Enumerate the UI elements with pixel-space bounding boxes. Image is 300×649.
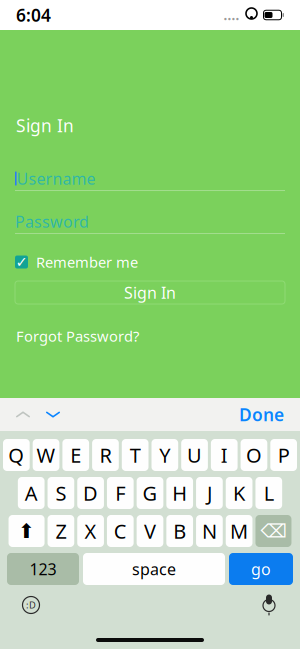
- staticText: Y: [159, 442, 170, 468]
- staticText: G: [142, 480, 157, 506]
- button[interactable]: Previous field: [8, 398, 38, 430]
- button[interactable]: Forgot Password?: [0, 326, 300, 346]
- button[interactable]: Delete: [255, 515, 291, 547]
- button[interactable]: G: [137, 477, 163, 509]
- button[interactable]: go: [229, 553, 293, 585]
- staticText: P: [278, 442, 290, 468]
- staticText: Q: [8, 442, 24, 468]
- button[interactable]: Emoji: [14, 592, 48, 618]
- staticText: O: [246, 442, 262, 468]
- staticText: M: [230, 518, 248, 544]
- button[interactable]: R: [92, 439, 119, 471]
- staticText: H: [172, 480, 187, 506]
- staticText: Sign In: [16, 114, 74, 137]
- button[interactable]: Dictation: [252, 592, 286, 618]
- staticText: ⌫: [260, 520, 286, 542]
- button[interactable]: V: [137, 515, 163, 547]
- staticText: S: [55, 480, 66, 506]
- staticText: B: [173, 518, 186, 544]
- button[interactable]: H: [166, 477, 193, 509]
- staticText: ✓: [15, 254, 27, 270]
- staticText: ....: [223, 6, 239, 24]
- staticText: L: [264, 480, 274, 506]
- button[interactable]: W: [33, 439, 59, 471]
- button[interactable]: P: [270, 439, 297, 471]
- staticText: N: [202, 518, 217, 544]
- staticText: V: [144, 518, 156, 544]
- button[interactable]: F: [107, 477, 134, 509]
- staticText: :D: [26, 599, 36, 611]
- button[interactable]: U: [181, 439, 208, 471]
- staticText: Password: [15, 211, 89, 232]
- button[interactable]: Sign In: [15, 281, 285, 304]
- button[interactable]: B: [166, 515, 193, 547]
- staticText: E: [70, 442, 81, 468]
- staticText: X: [85, 518, 97, 544]
- staticText: Done: [239, 403, 284, 426]
- button[interactable]: Shift: [9, 515, 45, 547]
- button[interactable]: ✓: [0, 252, 300, 272]
- staticText: space: [132, 558, 176, 580]
- staticText: R: [99, 442, 111, 468]
- staticText: C: [114, 518, 127, 544]
- button[interactable]: J: [196, 477, 223, 509]
- staticText: T: [130, 442, 141, 468]
- staticText: U: [187, 442, 202, 468]
- staticText: A: [25, 480, 38, 506]
- button[interactable]: D: [77, 477, 104, 509]
- button[interactable]: I: [211, 439, 238, 471]
- button[interactable]: A: [18, 477, 45, 509]
- staticText: go: [251, 558, 271, 580]
- button[interactable]: Y: [151, 439, 178, 471]
- button[interactable]: Done: [231, 398, 292, 430]
- staticText: Username: [17, 168, 96, 189]
- button[interactable]: T: [122, 439, 148, 471]
- button[interactable]: 123: [7, 553, 79, 585]
- button[interactable]: Next field: [38, 398, 68, 430]
- button[interactable]: M: [226, 515, 252, 547]
- staticText: Sign In: [124, 282, 176, 303]
- button[interactable]: L: [255, 477, 282, 509]
- button[interactable]: space: [83, 553, 225, 585]
- staticText: ⬆: [18, 520, 35, 542]
- staticText: I: [221, 442, 228, 468]
- button[interactable]: N: [196, 515, 223, 547]
- staticText: D: [83, 480, 98, 506]
- staticText: K: [233, 480, 245, 506]
- staticText: Z: [55, 518, 66, 544]
- staticText: Forgot Password?: [16, 326, 139, 346]
- button[interactable]: E: [62, 439, 89, 471]
- button[interactable]: C: [107, 515, 134, 547]
- button[interactable]: K: [226, 477, 252, 509]
- staticText: W: [37, 442, 56, 468]
- staticText: 6:04: [16, 3, 51, 26]
- staticText: F: [115, 480, 125, 506]
- button[interactable]: X: [77, 515, 104, 547]
- staticText: Remember me: [36, 252, 138, 272]
- button[interactable]: S: [48, 477, 74, 509]
- button[interactable]: Q: [3, 439, 30, 471]
- staticText: J: [207, 480, 212, 506]
- button[interactable]: Z: [48, 515, 74, 547]
- staticText: 123: [29, 558, 56, 580]
- button[interactable]: O: [241, 439, 267, 471]
